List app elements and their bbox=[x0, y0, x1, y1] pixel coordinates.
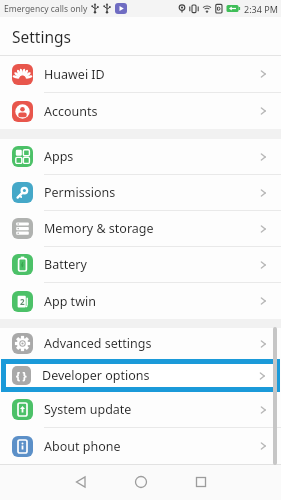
button[interactable]: 2 bbox=[0, 283, 281, 319]
staticText: Emergency calls only bbox=[4, 3, 88, 15]
button[interactable]: Battery bbox=[0, 247, 281, 283]
staticText: Developer options bbox=[42, 367, 150, 384]
staticText: Battery bbox=[44, 256, 87, 273]
staticText: 2 bbox=[20, 296, 25, 307]
button[interactable]: About phone bbox=[0, 428, 281, 464]
button[interactable]: Advanced settings bbox=[0, 328, 281, 359]
staticText: Permissions bbox=[44, 184, 116, 201]
button[interactable]: System update bbox=[0, 392, 281, 428]
staticText: 2:34 PM bbox=[244, 3, 278, 15]
button[interactable]: Accounts bbox=[0, 93, 281, 129]
staticText: Apps bbox=[44, 148, 74, 165]
button[interactable] bbox=[66, 471, 94, 493]
button[interactable] bbox=[187, 471, 215, 493]
staticText: Advanced settings bbox=[44, 335, 152, 352]
staticText: { } bbox=[16, 369, 27, 383]
staticText: About phone bbox=[44, 438, 121, 455]
staticText: Settings bbox=[12, 26, 71, 47]
button[interactable]: { } bbox=[1, 359, 280, 392]
button[interactable]: Huawei ID bbox=[0, 56, 281, 93]
staticText: System update bbox=[44, 401, 132, 418]
button[interactable]: Permissions bbox=[0, 175, 281, 211]
staticText: Memory & storage bbox=[44, 220, 154, 237]
button[interactable]: Memory & storage bbox=[0, 211, 281, 247]
button[interactable] bbox=[127, 471, 155, 493]
staticText: Accounts bbox=[44, 103, 98, 120]
button[interactable]: Apps bbox=[0, 139, 281, 175]
staticText: App twin bbox=[44, 293, 96, 310]
staticText: Huawei ID bbox=[44, 66, 105, 83]
